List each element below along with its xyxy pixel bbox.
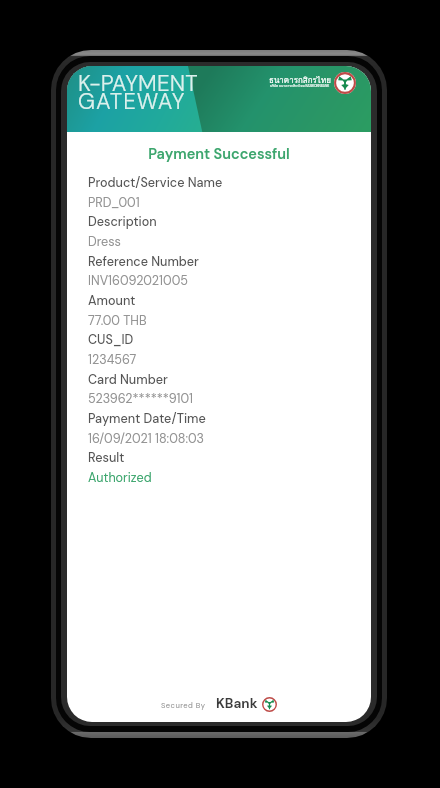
staticText: บริษัท ธนาคารกสิกรไทย KASIKORNBANK [270, 83, 330, 88]
staticText: GATEWAY [78, 87, 186, 116]
staticText: CUS_ID [88, 332, 134, 348]
staticText: Card Number [88, 372, 168, 388]
staticText: 77.00 THB [88, 313, 147, 329]
staticText: Authorized [88, 470, 152, 486]
staticText: Product/Service Name [88, 175, 223, 191]
staticText: 523962******9101 [88, 391, 193, 407]
staticText: PRD_001 [88, 195, 140, 211]
staticText: Payment Successful [67, 145, 371, 164]
staticText: Result [88, 450, 125, 466]
staticText: Amount [88, 293, 136, 309]
button[interactable]: Secured by KBank [161, 695, 277, 713]
staticText: 1234567 [88, 352, 137, 368]
staticText: Payment Date/Time [88, 411, 206, 427]
staticText: Secured By [161, 700, 206, 710]
staticText: Reference Number [88, 254, 199, 270]
staticText: 16/09/2021 18:08:03 [88, 431, 205, 447]
staticText: INV16092021005 [88, 273, 188, 289]
staticText: Dress [88, 234, 121, 250]
staticText: Description [88, 214, 157, 230]
staticText: ธนาคารกสิกรไทย [269, 74, 331, 87]
staticText: K-PAYMENT [78, 69, 198, 98]
staticText: KBank [216, 695, 258, 713]
